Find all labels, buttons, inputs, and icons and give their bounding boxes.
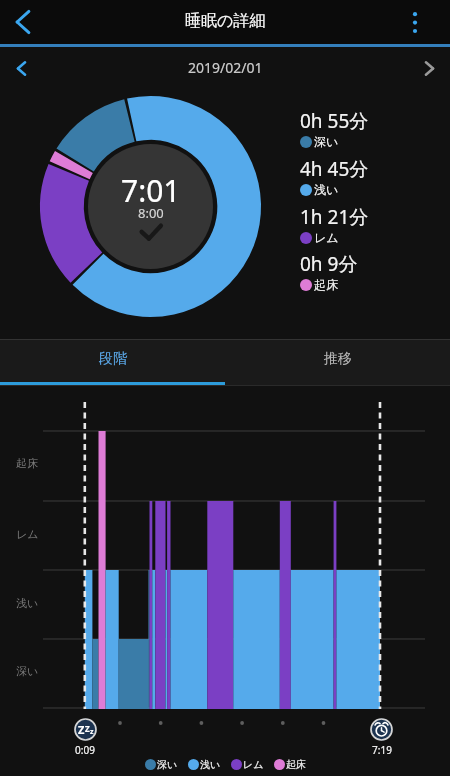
staticText: レム [243,758,264,771]
staticText: 浅い [16,596,39,610]
staticText: 0h 55分 [300,108,369,134]
staticText: 深い [314,134,339,149]
button[interactable]: Next day [414,53,444,83]
staticText: 1h 21分 [300,204,369,230]
staticText: z [90,727,94,737]
staticText: 0h 9分 [300,251,358,277]
staticText: 起床 [314,277,338,292]
staticText: 0:09 [70,743,100,757]
staticText: レム [16,527,39,541]
staticText: 深い [16,664,39,678]
staticText: 推移 [324,350,352,368]
staticText: 起床 [16,456,38,470]
button[interactable]: Wake up time [370,718,393,741]
button[interactable]: 段階 [0,340,225,385]
button[interactable]: 推移 [225,340,450,385]
staticText: Z [85,723,90,734]
staticText: レム [314,230,339,245]
button[interactable]: Previous day [6,53,36,83]
button[interactable]: Back [6,5,40,39]
staticText: 2019/02/01 [188,58,263,77]
staticText: 4h 45分 [300,156,369,182]
staticText: 睡眠の詳細 [185,11,266,31]
staticText: Z [78,722,85,737]
staticText: 8:00 [138,204,164,222]
button[interactable]: More options [398,5,432,39]
staticText: 7:19 [367,743,397,757]
staticText: 7:01 [121,170,181,210]
staticText: 浅い [314,182,339,197]
button[interactable]: Sleep start time [74,718,97,741]
staticText: 深い [157,758,178,771]
staticText: 浅い [200,758,221,771]
staticText: 起床 [286,758,306,771]
staticText: 段階 [99,350,127,368]
